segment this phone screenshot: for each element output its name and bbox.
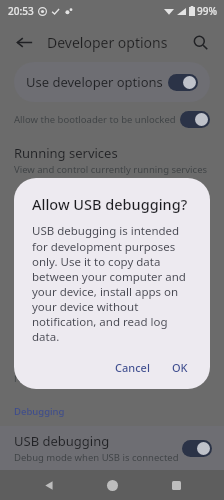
staticText: Running services <box>14 144 118 162</box>
staticText: Use developer options <box>26 73 163 91</box>
staticText: Grammatical gender <box>14 353 140 371</box>
staticText: 99% <box>197 4 217 18</box>
button[interactable]: Toggle <box>168 74 198 91</box>
staticText: Debugging <box>14 405 65 418</box>
button[interactable]: USB debugging <box>0 426 224 470</box>
staticText: OK <box>172 360 188 375</box>
button[interactable]: Toggle <box>180 111 210 128</box>
button[interactable]: Grammatical gender <box>0 351 224 387</box>
staticText: Quick settings developer tiles <box>14 321 194 339</box>
button[interactable]: Running services <box>0 142 224 178</box>
staticText: 20:53 <box>8 4 34 18</box>
button[interactable]: Toggle <box>182 440 212 457</box>
button[interactable]: Recents <box>161 470 191 500</box>
staticText: USB debugging is intended for developmen… <box>32 223 196 344</box>
staticText: Debug mode when USB is connected <box>14 451 179 464</box>
staticText: USB debugging <box>14 432 110 450</box>
staticText: View and control currently running servi… <box>14 163 208 176</box>
staticText: Not specified <box>14 372 73 385</box>
button[interactable]: Cancel <box>107 354 158 381</box>
staticText: Allow the bootloader to be unlocked <box>14 113 176 126</box>
staticText: Cancel <box>115 360 150 375</box>
staticText: Allow USB debugging? <box>32 194 188 214</box>
button[interactable]: OK <box>164 354 196 381</box>
button[interactable]: Use developer options <box>14 62 210 102</box>
staticText: Developer options <box>47 33 168 52</box>
button[interactable]: Home <box>97 470 127 500</box>
button[interactable]: Back <box>34 470 64 500</box>
button[interactable]: Search <box>182 24 218 60</box>
button[interactable]: Quick settings developer tiles <box>0 319 224 341</box>
button[interactable]: Back <box>6 24 42 60</box>
